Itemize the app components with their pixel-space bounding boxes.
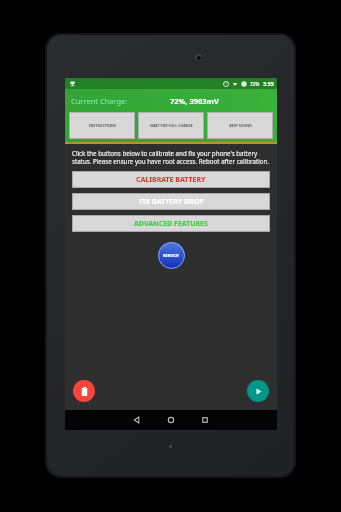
staticText: 72% (250, 81, 260, 87)
staticText: 3:55 (263, 80, 274, 87)
button[interactable]: BEEP SOUND (207, 112, 273, 139)
button[interactable]: Reset battery stats (73, 380, 95, 402)
staticText: Click the buttons below to calibrate and… (72, 149, 270, 165)
button[interactable]: Recent apps (188, 410, 222, 430)
staticText: Current Charge: (71, 96, 128, 106)
staticText: CALIBRATE BATTERY (136, 175, 206, 185)
staticText: FIX BATTERY DROP (139, 197, 204, 207)
button[interactable]: WAIT FOR FULL CHARGE (138, 112, 204, 139)
button[interactable]: Back (120, 410, 154, 430)
button[interactable]: FIX BATTERY DROP (72, 193, 270, 210)
staticText: INSTRUCTIONS (89, 123, 116, 128)
staticText: REBOOT (163, 253, 180, 258)
staticText: 72%, 3903mV (170, 96, 219, 106)
button[interactable]: Start calibration (247, 380, 269, 402)
staticText: ADVANCED FEATURES (134, 219, 208, 229)
staticText: BEEP SOUND (229, 123, 252, 128)
button[interactable]: INSTRUCTIONS (69, 112, 135, 139)
button[interactable]: CALIBRATE BATTERY (72, 171, 270, 188)
staticText: WAIT FOR FULL CHARGE (150, 123, 193, 128)
button[interactable]: REBOOT (158, 242, 185, 269)
button[interactable]: ADVANCED FEATURES (72, 215, 270, 232)
button[interactable]: Home (154, 410, 188, 430)
